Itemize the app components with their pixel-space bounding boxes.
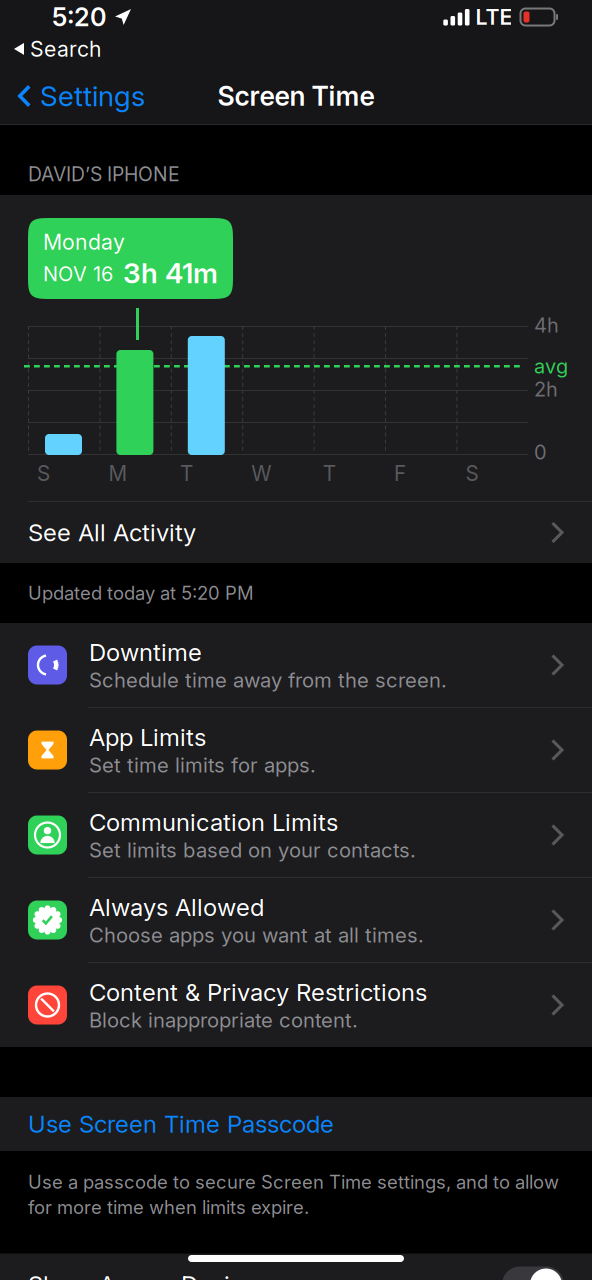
staticText: Communication Limits [89, 808, 338, 837]
staticText: Settings [40, 79, 145, 113]
staticText: Monday [43, 229, 125, 255]
staticText: 5:20 [52, 2, 107, 32]
button[interactable]: Use Screen Time Passcode [0, 1097, 592, 1151]
button[interactable]: Settings [0, 68, 155, 124]
staticText: Content & Privacy Restrictions [89, 978, 427, 1007]
staticText: Share Across Devices [28, 1270, 269, 1280]
staticText: 2h [534, 377, 558, 401]
staticText: for more time when limits expire. [28, 1196, 309, 1219]
button[interactable]: App Limits [0, 708, 592, 792]
staticText: 0 [534, 440, 547, 464]
staticText: App Limits [89, 723, 206, 752]
staticText: 4h [534, 313, 559, 337]
staticText: M [108, 461, 127, 486]
staticText: Always Allowed [89, 893, 264, 922]
staticText: S [37, 461, 50, 486]
staticText: Updated today at 5:20 PM [28, 582, 254, 604]
staticText: Use Screen Time Passcode [28, 1109, 334, 1138]
button[interactable]: See All Activity [0, 502, 592, 563]
staticText: T [180, 461, 193, 486]
staticText: F [394, 461, 406, 486]
staticText: Set limits based on your contacts. [89, 838, 416, 862]
staticText: Block inappropriate content. [89, 1008, 358, 1032]
staticText: 3h 41m [123, 256, 218, 290]
staticText: Schedule time away from the screen. [89, 668, 447, 692]
staticText: NOV 16 [43, 262, 113, 286]
staticText: Screen Time [217, 80, 374, 112]
staticText: avg [534, 354, 568, 378]
staticText: W [251, 461, 271, 486]
staticText: Downtime [89, 638, 202, 667]
staticText: Choose apps you want at all times. [89, 923, 424, 947]
staticText: Use a passcode to secure Screen Time set… [28, 1171, 559, 1193]
button[interactable]: Share Across Devices [0, 1253, 592, 1280]
staticText: S [465, 461, 478, 486]
button[interactable]: Always Allowed [0, 878, 592, 962]
staticText: T [323, 461, 336, 486]
staticText: Search [30, 36, 102, 62]
staticText: DAVID’S IPHONE [28, 163, 180, 186]
button[interactable]: Communication Limits [0, 793, 592, 877]
button[interactable]: Content & Privacy Restrictions [0, 963, 592, 1047]
staticText: Set time limits for apps. [89, 753, 316, 777]
staticText: See All Activity [28, 518, 196, 547]
staticText: LTE [475, 4, 512, 30]
button[interactable]: Downtime [0, 623, 592, 707]
